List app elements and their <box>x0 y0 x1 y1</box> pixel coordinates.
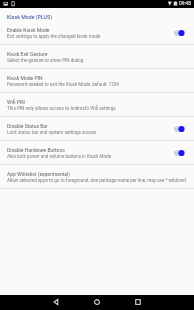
button[interactable]: Toggle <box>174 25 194 41</box>
button[interactable]: Recent apps <box>128 295 148 308</box>
staticText: Kiosk Mode (PLUS) <box>7 14 52 20</box>
button[interactable]: Disable Hardware Buttons <box>0 141 194 165</box>
staticText: Wifi PIN <box>7 99 25 105</box>
staticText: Disable Hardware Buttons <box>7 147 65 153</box>
staticText: Disable Status Bar <box>7 123 48 129</box>
staticText: Allow selected apps to go to foreground,… <box>7 178 186 183</box>
staticText: Lock status bar and system settings acce… <box>7 130 97 135</box>
staticText: This PIN only allows access to Android's… <box>7 106 116 111</box>
button[interactable]: Back <box>46 295 66 308</box>
button[interactable]: Kiosk Exit Gesture <box>0 45 194 69</box>
button[interactable]: Enable Kiosk Mode <box>0 21 194 45</box>
button[interactable]: Toggle <box>174 145 194 161</box>
button[interactable]: Toggle <box>174 121 194 137</box>
staticText: Kiosk Mode PIN <box>7 75 43 81</box>
button[interactable]: App Whitelist (experimental) <box>0 165 194 189</box>
button[interactable]: Kiosk Mode PIN <box>0 69 194 93</box>
button[interactable]: Home <box>87 295 107 308</box>
staticText: 09:48 <box>179 1 191 7</box>
button[interactable]: Wifi PIN <box>0 93 194 117</box>
staticText: Exit settings to apply the changed kiosk… <box>7 34 101 39</box>
staticText: Also lock power and volume buttons in Ki… <box>7 154 112 159</box>
staticText: Enable Kiosk Mode <box>7 27 50 33</box>
staticText: Password needed to exit the Kiosk Mode, … <box>7 82 119 87</box>
staticText: Kiosk Exit Gesture <box>7 51 48 57</box>
button[interactable]: Disable Status Bar <box>0 117 194 141</box>
staticText: Select the gesture to show PIN dialog <box>7 58 84 63</box>
staticText: App Whitelist (experimental) <box>7 171 71 177</box>
